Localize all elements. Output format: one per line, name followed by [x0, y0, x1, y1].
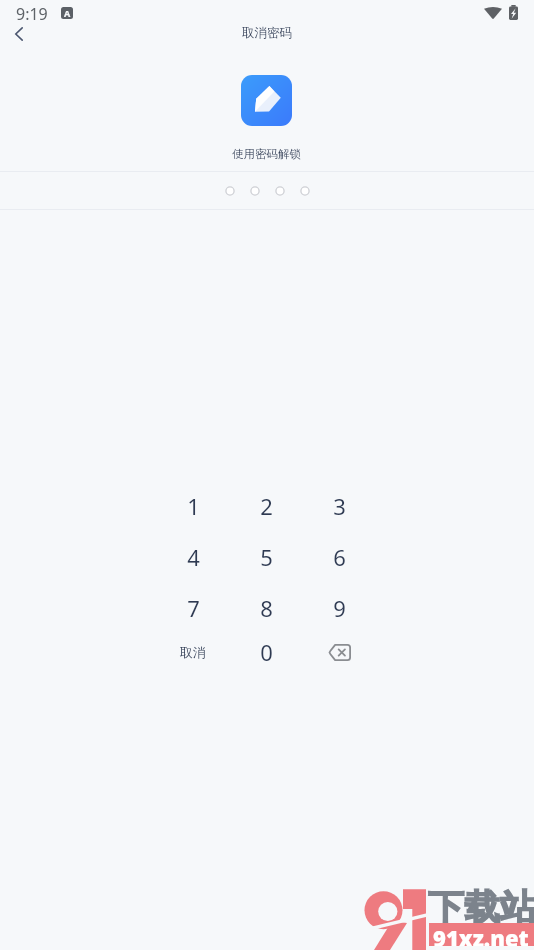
- staticText: 使用密码解锁: [232, 147, 301, 161]
- staticText: 9: [333, 593, 346, 623]
- button[interactable]: Delete: [303, 627, 375, 677]
- button[interactable]: 8: [230, 583, 302, 633]
- staticText: 6: [333, 542, 346, 572]
- button[interactable]: 1: [157, 481, 229, 531]
- staticText: 8: [260, 593, 273, 623]
- button[interactable]: 6: [303, 532, 375, 582]
- staticText: 3: [333, 491, 346, 521]
- button[interactable]: Back: [2, 22, 36, 46]
- button[interactable]: 7: [157, 583, 229, 633]
- staticText: 取消: [180, 644, 206, 660]
- button[interactable]: 9: [303, 583, 375, 633]
- button[interactable]: 3: [303, 481, 375, 531]
- staticText: 2: [260, 491, 273, 521]
- button[interactable]: 0: [230, 627, 302, 677]
- staticText: 1: [187, 491, 200, 521]
- staticText: 0: [260, 637, 273, 667]
- button[interactable]: Unlock with password: [241, 75, 292, 126]
- button[interactable]: 5: [230, 532, 302, 582]
- staticText: 取消密码: [242, 25, 292, 41]
- staticText: 下载站: [428, 885, 534, 930]
- staticText: 7: [187, 593, 200, 623]
- staticText: A: [64, 7, 71, 19]
- staticText: 5: [260, 542, 273, 572]
- staticText: 91xz.net: [433, 923, 529, 946]
- button[interactable]: 4: [157, 532, 229, 582]
- button[interactable]: 取消: [157, 627, 229, 677]
- staticText: 9:19: [16, 3, 48, 25]
- staticText: 4: [187, 542, 200, 572]
- button[interactable]: 2: [230, 481, 302, 531]
